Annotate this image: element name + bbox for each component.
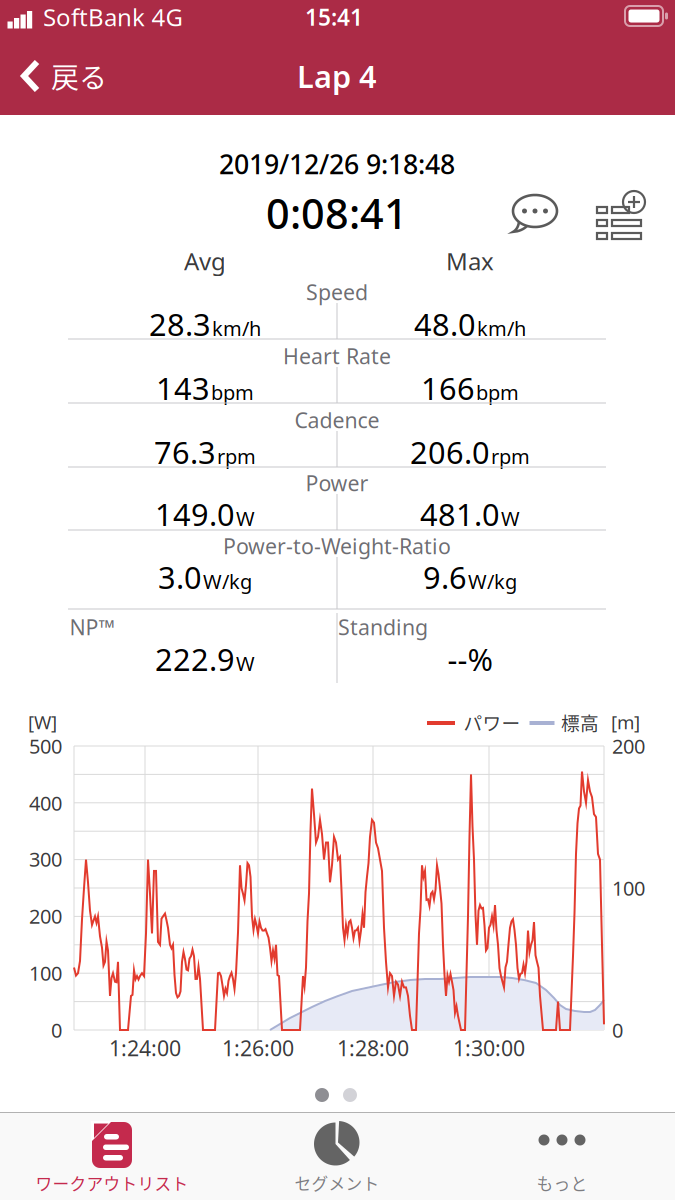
staticText: 1:28:00 (337, 1034, 409, 1062)
staticText: 200 (29, 903, 62, 929)
staticText: --% (447, 639, 492, 679)
staticText: 28.3 (149, 304, 211, 344)
staticText: rpm (491, 443, 530, 469)
button[interactable]: 戻る (21, 56, 107, 96)
staticText: NP™ (69, 613, 114, 641)
staticText: 149.0 (155, 494, 235, 534)
staticText: 1:30:00 (453, 1034, 525, 1062)
staticText: bpm (476, 379, 519, 405)
staticText: 76.3 (154, 432, 216, 472)
button[interactable]: もっと (450, 1113, 674, 1200)
staticText: 143 (156, 368, 210, 408)
staticText: 481.0 (420, 494, 500, 534)
staticText: Power-to-Weight-Ratio (223, 532, 451, 560)
staticText: 1:24:00 (109, 1034, 181, 1062)
staticText: km/h (212, 315, 261, 341)
staticText: 100 (29, 960, 62, 986)
staticText: 0 (51, 1017, 62, 1043)
staticText: ワークアウトリスト (35, 1171, 188, 1195)
staticText: 222.9 (155, 639, 235, 679)
staticText: W (501, 505, 520, 531)
staticText: Lap 4 (297, 56, 377, 96)
staticText: [W] (28, 710, 57, 734)
staticText: 0:08:41 (266, 186, 408, 240)
button[interactable] (509, 194, 561, 234)
staticText: 300 (29, 846, 62, 872)
staticText: 1:26:00 (222, 1034, 294, 1062)
staticText: もっと (536, 1171, 587, 1195)
staticText: セグメント (294, 1171, 379, 1195)
staticText: 166 (421, 368, 475, 408)
staticText: 標高 (561, 708, 599, 735)
staticText: SoftBank (43, 1, 145, 33)
staticText: 206.0 (410, 432, 490, 472)
staticText: [m] (611, 710, 640, 734)
staticText: 戻る (51, 56, 107, 96)
staticText: rpm (217, 443, 256, 469)
staticText: Cadence (294, 406, 379, 434)
staticText: W/kg (468, 568, 517, 594)
button[interactable]: セグメント (225, 1113, 449, 1200)
staticText: 0 (612, 1017, 623, 1043)
staticText: W (236, 505, 255, 531)
staticText: 48.0 (414, 304, 476, 344)
staticText: 400 (29, 790, 62, 816)
staticText: Standing (338, 613, 428, 641)
staticText: 15:41 (305, 2, 363, 32)
staticText: W/kg (203, 568, 252, 594)
staticText: 500 (29, 733, 62, 759)
staticText: km/h (477, 315, 526, 341)
staticText: W (236, 650, 255, 676)
staticText: 9.6 (423, 557, 467, 597)
staticText: Heart Rate (283, 342, 391, 370)
button[interactable] (596, 191, 644, 241)
staticText: パワー (463, 708, 520, 735)
button[interactable]: ワークアウトリスト (0, 1113, 224, 1200)
staticText: 100 (612, 875, 645, 901)
staticText: 200 (612, 733, 645, 759)
staticText: bpm (211, 379, 254, 405)
staticText: Avg (184, 245, 226, 277)
staticText: Speed (306, 278, 368, 306)
staticText: 3.0 (158, 557, 202, 597)
staticText: Power (305, 469, 368, 497)
staticText: 2019/12/26 9:18:48 (219, 146, 455, 182)
staticText: 4G (151, 1, 182, 33)
staticText: Max (446, 245, 494, 277)
